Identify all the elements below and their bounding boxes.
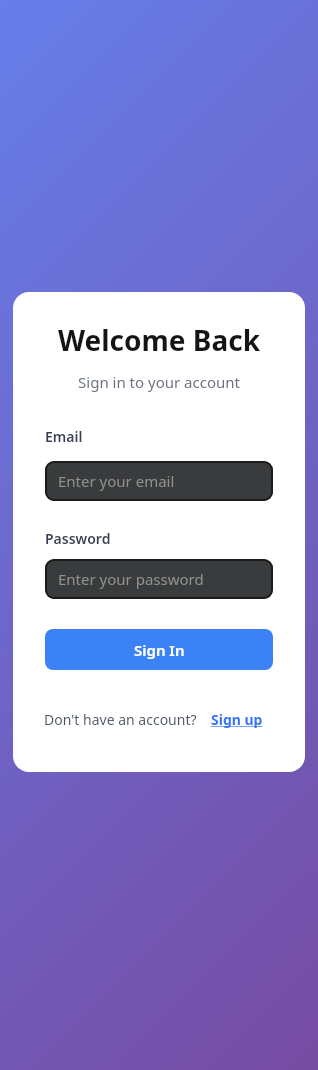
staticText: Sign In xyxy=(134,640,185,660)
button[interactable]: Enter your email xyxy=(45,461,273,501)
button[interactable]: Sign up xyxy=(211,710,263,729)
staticText: Sign in to your account xyxy=(45,372,273,392)
staticText: Enter your email xyxy=(58,471,175,491)
button[interactable]: Enter your password xyxy=(45,559,273,599)
staticText: Email xyxy=(45,427,83,446)
staticText: Welcome Back xyxy=(45,321,273,359)
staticText: Password xyxy=(45,529,111,548)
staticText: Enter your password xyxy=(58,569,204,589)
button[interactable]: Sign In xyxy=(45,629,273,670)
staticText: Don't have an account? xyxy=(44,710,197,729)
